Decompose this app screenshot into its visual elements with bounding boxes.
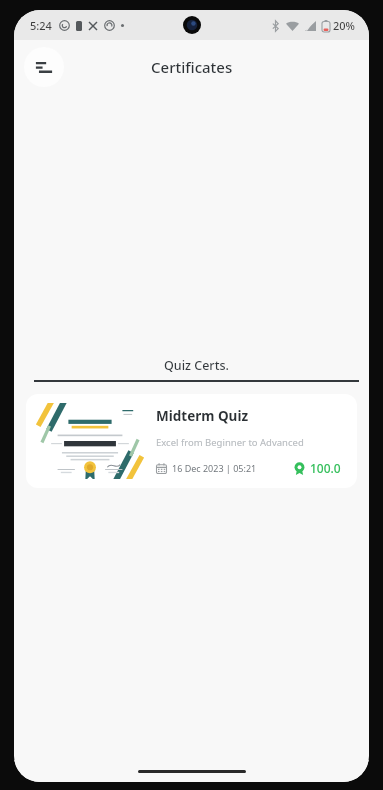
button[interactable]: Quiz Certs. [24, 357, 369, 382]
staticText: Quiz Certs. [164, 357, 229, 374]
staticText: 16 Dec 2023 | 05:21 [172, 462, 257, 474]
staticText: 20% [333, 18, 355, 33]
staticText: Certificates [151, 57, 233, 77]
button[interactable]: Midterm Quiz [26, 394, 357, 488]
staticText: Excel from Beginner to Advanced [156, 436, 304, 449]
button[interactable]: Open navigation menu [24, 47, 64, 87]
staticText: 100.0 [310, 460, 341, 476]
staticText: Midterm Quiz [156, 407, 249, 425]
staticText: 5:24 [30, 18, 52, 33]
